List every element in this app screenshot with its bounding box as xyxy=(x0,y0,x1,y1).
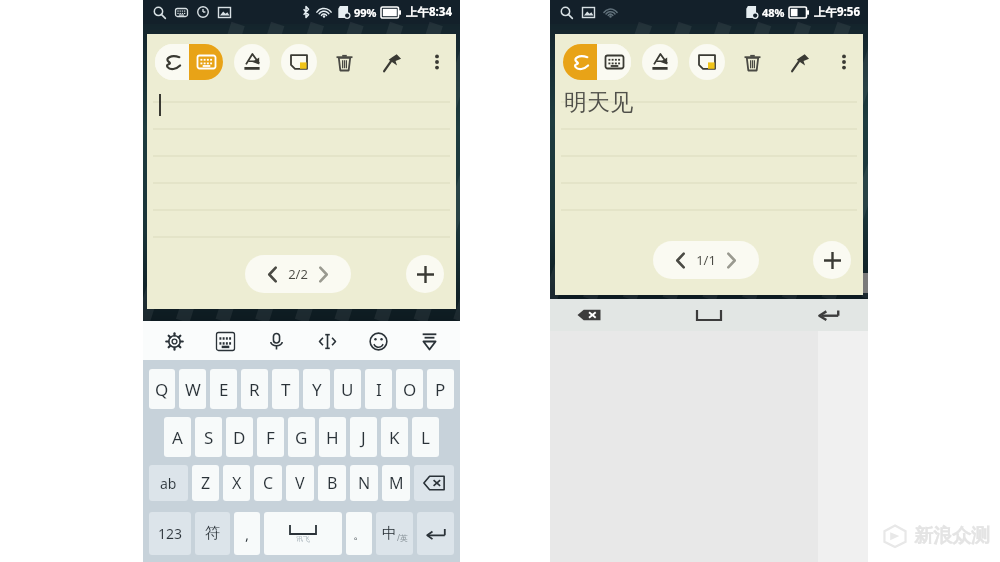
button[interactable]: Keyboard xyxy=(597,44,631,80)
button[interactable]: Emoji xyxy=(358,324,398,358)
staticText: V xyxy=(295,472,305,494)
button[interactable]: Brush xyxy=(642,44,678,80)
button[interactable]: F xyxy=(257,417,284,457)
staticText: L xyxy=(421,426,430,449)
staticText: 1/1 xyxy=(696,251,716,269)
button[interactable]: T xyxy=(272,369,299,409)
staticText: Z xyxy=(201,472,211,494)
staticText: 讯飞输入法 xyxy=(306,282,349,293)
button[interactable]: H xyxy=(319,417,346,457)
button[interactable]: , xyxy=(234,512,260,555)
staticText: Q xyxy=(155,378,169,401)
staticText: 讯飞 xyxy=(296,534,310,543)
button[interactable]: Move cursor xyxy=(307,324,347,358)
staticText: E xyxy=(219,378,229,401)
staticText: J xyxy=(361,426,366,449)
button[interactable]: Space xyxy=(689,303,729,327)
staticText: 。 xyxy=(353,526,366,542)
staticText: T xyxy=(281,378,291,401)
button[interactable]: E xyxy=(210,369,237,409)
staticText: 99% xyxy=(354,5,377,20)
button[interactable]: M xyxy=(382,465,410,501)
staticText: 123 xyxy=(158,524,183,543)
button[interactable]: C xyxy=(254,465,282,501)
staticText: K xyxy=(389,426,400,449)
staticText: X xyxy=(232,472,242,494)
staticText: /英 xyxy=(397,532,408,543)
button[interactable]: Z xyxy=(192,465,219,501)
button[interactable]: Delete xyxy=(329,47,359,77)
staticText: 更多应用 xyxy=(388,282,422,293)
button[interactable]: A xyxy=(164,417,191,457)
button[interactable]: S xyxy=(195,417,222,457)
staticText: Y xyxy=(312,378,322,401)
button[interactable]: V xyxy=(286,465,314,501)
button[interactable]: Hide keyboard xyxy=(409,324,449,358)
button[interactable]: Voice input xyxy=(256,324,296,358)
staticText: P xyxy=(435,378,446,401)
staticText: 中 xyxy=(382,524,397,543)
button[interactable]: Settings xyxy=(154,324,194,358)
button[interactable]: Add note xyxy=(813,241,851,279)
button[interactable]: Handwriting xyxy=(563,44,597,80)
button[interactable]: Chinese English toggle xyxy=(376,512,413,555)
button[interactable]: 。 xyxy=(346,512,372,555)
staticText: , xyxy=(245,524,250,544)
button[interactable]: 1/1 xyxy=(653,241,759,279)
staticText: H xyxy=(326,426,339,449)
button[interactable]: P xyxy=(427,369,454,409)
button[interactable]: Q xyxy=(149,369,175,409)
button[interactable]: X xyxy=(223,465,250,501)
staticText: N xyxy=(358,472,371,494)
button[interactable]: Insert image xyxy=(281,44,317,80)
button[interactable]: Backspace xyxy=(572,303,606,327)
button[interactable]: Add note xyxy=(406,255,444,293)
button[interactable]: Handwriting xyxy=(155,44,189,80)
button[interactable]: L xyxy=(412,417,439,457)
button[interactable]: Y xyxy=(303,369,330,409)
button[interactable]: O xyxy=(396,369,423,409)
staticText: 2/2 xyxy=(288,265,308,283)
button[interactable]: 123 xyxy=(149,512,191,555)
staticText: ab xyxy=(160,474,177,493)
button[interactable]: Pin xyxy=(377,47,407,77)
staticText: B xyxy=(327,472,338,494)
staticText: G xyxy=(295,426,308,449)
staticText: O xyxy=(403,378,417,401)
button[interactable]: J xyxy=(350,417,377,457)
staticText: W xyxy=(185,378,201,401)
button[interactable]: I xyxy=(365,369,392,409)
button[interactable]: More options xyxy=(423,47,450,77)
button[interactable]: B xyxy=(318,465,346,501)
button[interactable]: U xyxy=(334,369,361,409)
button[interactable]: Brush xyxy=(234,44,270,80)
button[interactable]: Delete xyxy=(737,47,767,77)
staticText: 上午9:56 xyxy=(814,4,860,20)
button[interactable]: Keyboard layout xyxy=(205,324,245,358)
staticText: 符 xyxy=(205,524,220,543)
staticText: U xyxy=(341,378,354,401)
staticText: C xyxy=(263,472,274,494)
staticText: 明天见 xyxy=(564,88,633,117)
button[interactable]: Enter xyxy=(812,303,846,327)
button[interactable]: R xyxy=(241,369,268,409)
button[interactable]: Enter xyxy=(417,512,454,555)
staticText: D xyxy=(233,426,246,449)
button[interactable]: 2/2 xyxy=(245,255,351,293)
button[interactable]: Space xyxy=(264,512,342,555)
button[interactable]: Insert image xyxy=(689,44,725,80)
button[interactable]: D xyxy=(226,417,253,457)
button[interactable]: More options xyxy=(831,47,857,77)
button[interactable]: Pin xyxy=(785,47,815,77)
button[interactable]: ab xyxy=(149,465,188,501)
button[interactable]: G xyxy=(288,417,315,457)
button[interactable]: 符 xyxy=(195,512,230,555)
button[interactable]: Backspace xyxy=(414,465,454,501)
button[interactable]: N xyxy=(350,465,378,501)
button[interactable]: W xyxy=(179,369,206,409)
button[interactable]: K xyxy=(381,417,408,457)
button[interactable]: Keyboard xyxy=(189,44,223,80)
